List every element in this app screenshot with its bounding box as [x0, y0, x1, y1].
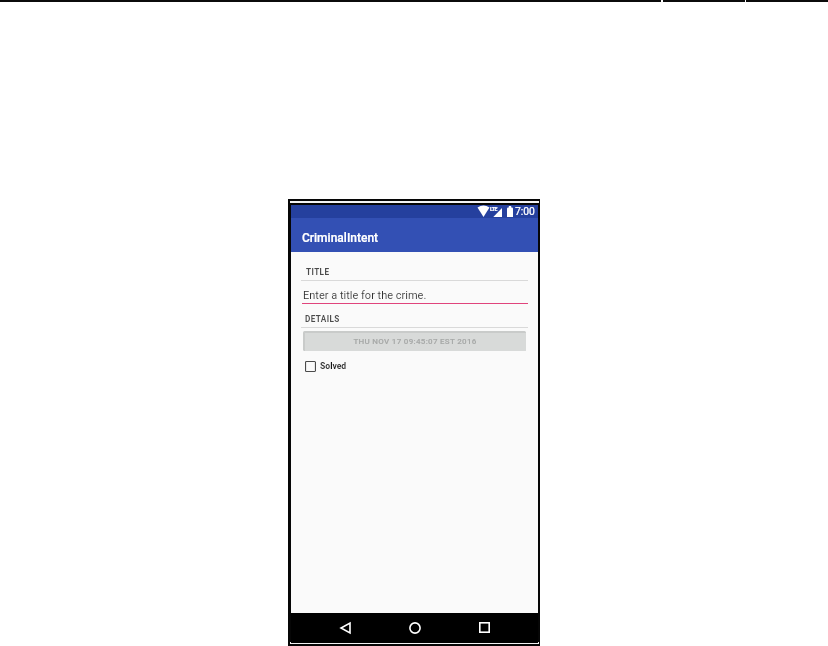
button[interactable]: Enter a title for the crime.	[302, 285, 528, 304]
button[interactable]: Back	[323, 613, 368, 643]
staticText: THU NOV 17 09:45:07 EST 2016	[353, 337, 477, 346]
button[interactable]: Home	[392, 613, 437, 643]
button[interactable]: Recent apps	[462, 612, 507, 642]
staticText: Solved	[320, 361, 347, 371]
staticText: TITLE	[306, 267, 330, 277]
staticText: 7:00	[515, 205, 535, 217]
staticText: CriminalIntent	[302, 231, 379, 245]
staticText: DETAILS	[305, 314, 340, 324]
button[interactable]: Solved	[305, 358, 347, 374]
button[interactable]: THU NOV 17 09:45:07 EST 2016	[303, 331, 526, 351]
staticText: LTE	[490, 206, 498, 212]
staticText: Enter a title for the crime.	[303, 289, 427, 302]
